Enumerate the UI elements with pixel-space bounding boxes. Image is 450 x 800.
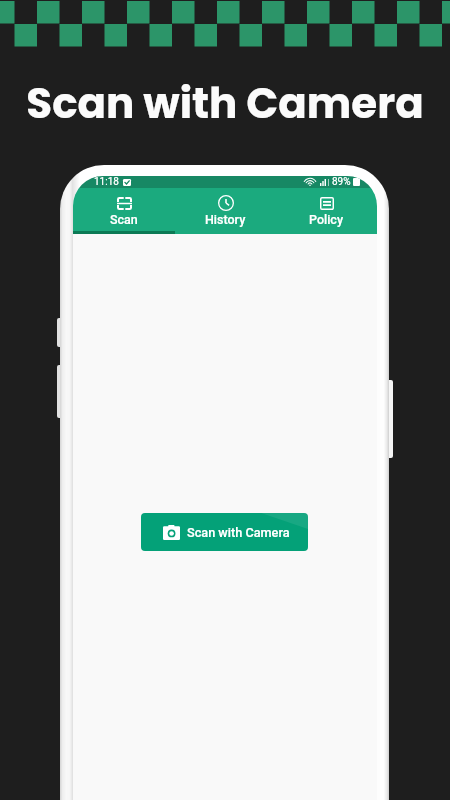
staticText: Scan: [110, 212, 138, 227]
staticText: History: [205, 212, 246, 227]
staticText: 89%: [332, 176, 351, 188]
button[interactable]: Scan: [73, 188, 175, 234]
button[interactable]: Scan with Camera: [141, 513, 308, 551]
button[interactable]: History: [175, 188, 276, 234]
other: Scan: [117, 197, 132, 210]
staticText: Policy: [309, 212, 344, 227]
staticText: 11:18: [94, 176, 119, 188]
other: History: [218, 195, 234, 211]
staticText: Scan with Camera: [187, 525, 290, 540]
staticText: Scan with Camera: [0, 74, 450, 133]
other: Policy: [320, 197, 334, 210]
button[interactable]: Policy: [276, 188, 377, 234]
